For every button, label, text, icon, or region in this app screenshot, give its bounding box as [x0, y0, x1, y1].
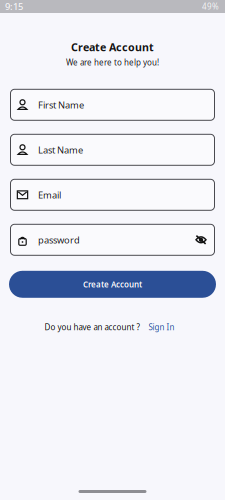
staticText: 49%	[202, 1, 219, 12]
button[interactable]: Create Account	[9, 271, 216, 298]
staticText: Last Name	[38, 144, 83, 156]
staticText: Email	[38, 189, 61, 201]
staticText: Sign In	[148, 322, 174, 332]
staticText: password	[38, 234, 80, 246]
button[interactable]: Sign In	[148, 322, 174, 332]
staticText: We are here to help you!	[66, 57, 159, 68]
staticText: Create Account	[83, 279, 142, 290]
staticText: 9:15	[5, 0, 23, 13]
staticText: Create Account	[71, 40, 154, 54]
staticText: First Name	[38, 99, 84, 111]
staticText: Do you have an account ?	[44, 322, 139, 332]
